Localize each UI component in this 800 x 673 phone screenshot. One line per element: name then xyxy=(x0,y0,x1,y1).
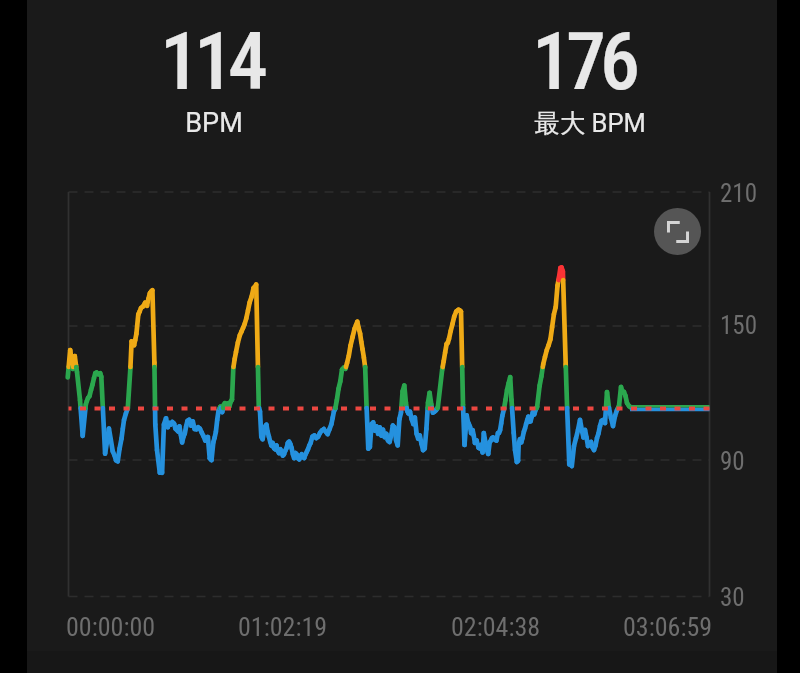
staticText: 114 xyxy=(111,15,311,673)
staticText: 02:04:38 xyxy=(451,612,541,642)
button[interactable]: Expand chart to full screen xyxy=(654,208,701,255)
staticText: 210 xyxy=(720,179,758,208)
staticText: 00:00:00 xyxy=(66,612,156,642)
staticText: 03:06:59 xyxy=(623,612,713,642)
staticText: 150 xyxy=(720,311,758,340)
staticText: 90 xyxy=(720,447,745,476)
staticText: 30 xyxy=(720,583,745,612)
staticText: 最大 BPM xyxy=(490,107,690,673)
staticText: 176 xyxy=(483,15,683,673)
staticText: 01:02:19 xyxy=(238,612,328,642)
staticText: BPM xyxy=(114,107,314,673)
